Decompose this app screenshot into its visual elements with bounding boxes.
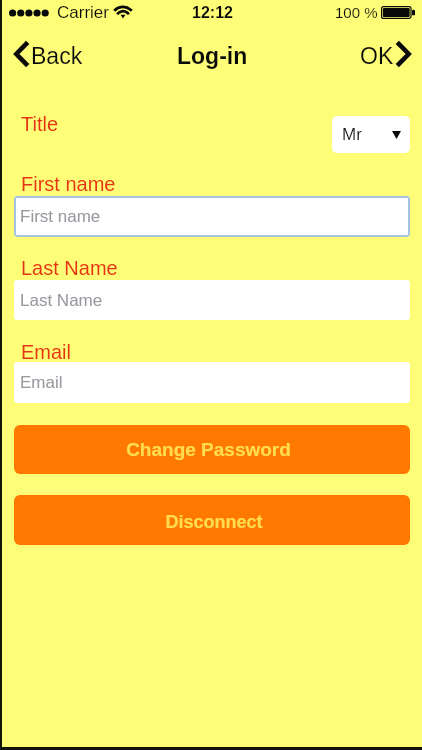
button[interactable]: Change Password	[14, 425, 410, 474]
button[interactable]: First name	[14, 196, 410, 237]
staticText: Last Name	[21, 257, 118, 279]
staticText: Back	[31, 43, 83, 69]
staticText: OK	[360, 43, 394, 69]
button[interactable]: Disconnect	[14, 495, 410, 545]
button[interactable]: Email	[14, 362, 410, 403]
staticText: Log-in	[177, 43, 248, 69]
staticText: Title	[21, 113, 59, 135]
button[interactable]: OK	[348, 34, 422, 74]
staticText: 100 %	[335, 4, 378, 21]
staticText: Change Password	[126, 439, 291, 460]
staticText: Email	[21, 341, 72, 363]
staticText: Disconnect	[165, 512, 263, 532]
staticText: Mr	[342, 125, 362, 144]
button[interactable]: Back	[0, 34, 93, 74]
staticText: Last Name	[20, 291, 103, 310]
button[interactable]: Title selector	[332, 116, 410, 153]
staticText: Email	[20, 373, 63, 392]
button[interactable]: Last Name	[14, 280, 410, 320]
staticText: First name	[20, 207, 101, 226]
staticText: First name	[21, 173, 116, 195]
staticText: 12:12	[192, 4, 233, 22]
staticText: Carrier	[57, 3, 109, 22]
